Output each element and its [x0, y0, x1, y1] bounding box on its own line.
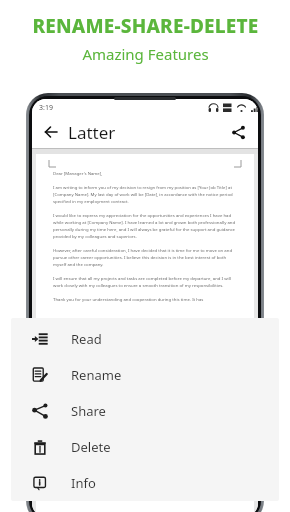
button[interactable]: Back	[40, 121, 62, 143]
staticText: RENAME-SHARE-DELETE	[32, 13, 259, 39]
staticText: Delete	[71, 438, 111, 456]
staticText: Amazing Features	[82, 44, 209, 64]
staticText: Latter	[68, 121, 116, 144]
staticText: 3:19	[39, 103, 53, 113]
staticText: Share	[71, 402, 106, 420]
button[interactable]: Info	[11, 465, 279, 501]
staticText: I will ensure that all my projects and t…	[53, 275, 237, 288]
button[interactable]: Share	[11, 393, 279, 429]
button[interactable]: Delete	[11, 429, 279, 465]
staticText: Read	[71, 330, 102, 348]
staticText: However, after careful consideration, I …	[53, 247, 237, 267]
staticText: Info	[71, 474, 96, 492]
staticText: I would like to express my appreciation …	[53, 212, 237, 239]
staticText: I am writing to inform you of my decisio…	[53, 184, 237, 204]
button[interactable]: Read	[11, 320, 279, 357]
button[interactable]: Rename	[11, 357, 279, 393]
staticText: Thank you for your understanding and coo…	[53, 296, 204, 302]
staticText: Rename	[71, 366, 122, 384]
staticText: Dear [Manager's Name],	[53, 170, 103, 176]
button[interactable]: Share	[227, 121, 249, 143]
